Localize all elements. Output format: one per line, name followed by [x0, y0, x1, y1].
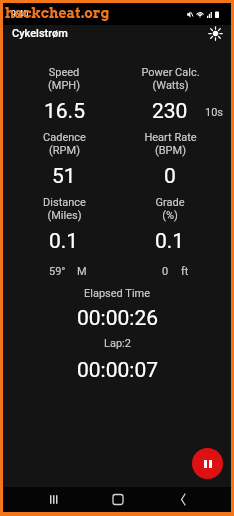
- staticText: Cykelstrøm: [12, 27, 68, 40]
- staticText: 16.5: [44, 99, 85, 124]
- staticText: Distance (Miles): [43, 196, 86, 222]
- staticText: Heart Rate (BPM): [144, 131, 197, 157]
- staticText: Speed (MPH): [48, 66, 80, 92]
- staticText: M: [77, 265, 87, 278]
- staticText: ft: [181, 265, 189, 278]
- staticText: Grade (%): [155, 196, 185, 222]
- staticText: 10s: [205, 106, 224, 119]
- staticText: 00:00:07: [77, 358, 158, 383]
- button[interactable]: Recent apps: [41, 487, 67, 512]
- staticText: Cadence (RPM): [43, 131, 86, 157]
- staticText: 51: [52, 164, 76, 189]
- button[interactable]: Pause: [192, 448, 223, 479]
- staticText: Elapsed Time: [84, 287, 151, 300]
- staticText: 230: [152, 99, 188, 124]
- staticText: 59°: [49, 265, 66, 278]
- staticText: 0.1: [49, 229, 79, 254]
- staticText: 9:40: [11, 9, 29, 20]
- button[interactable]: Back: [170, 487, 196, 512]
- staticText: 0: [164, 164, 176, 189]
- staticText: 0: [162, 265, 169, 278]
- button[interactable]: Home: [105, 487, 131, 512]
- staticText: 00:00:26: [77, 306, 158, 331]
- button[interactable]: Brightness: [204, 22, 226, 44]
- staticText: Power Calc. (Watts): [141, 66, 200, 92]
- staticText: hackcheat.org: [5, 5, 110, 22]
- staticText: 0.1: [155, 229, 185, 254]
- staticText: Lap:2: [104, 337, 131, 350]
